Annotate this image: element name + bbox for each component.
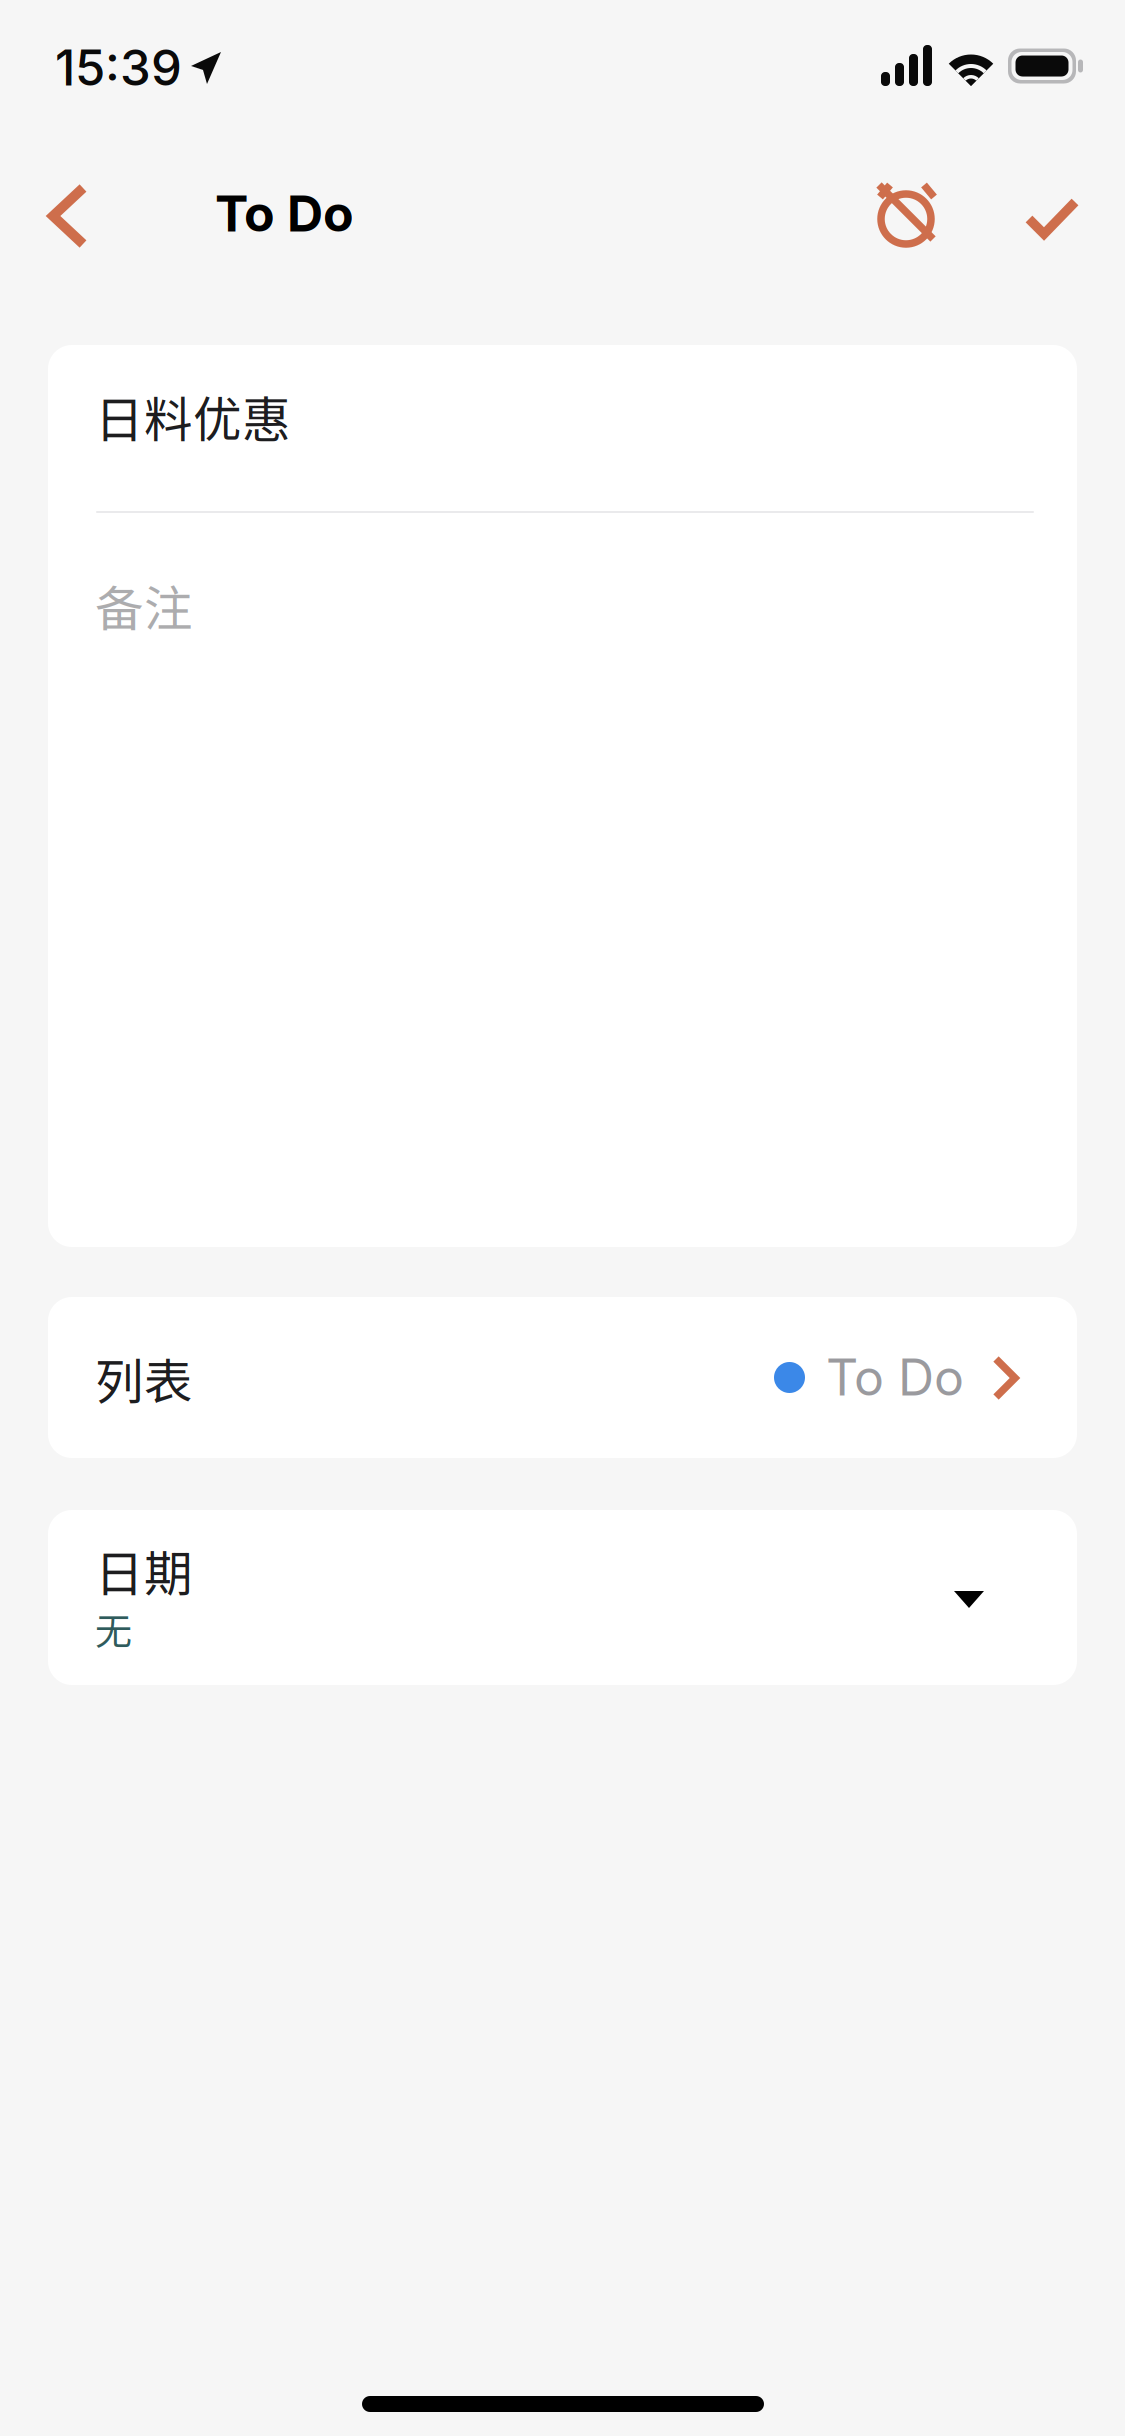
button[interactable]: Set reminder (850, 156, 962, 268)
staticText: 备注 (95, 570, 193, 640)
staticText: To Do (215, 183, 354, 243)
staticText: 15:39 (55, 38, 182, 97)
button[interactable]: 日料优惠 (48, 345, 1077, 1247)
staticText: 日料优惠 (95, 381, 291, 451)
button[interactable]: 日期 (48, 1510, 1077, 1685)
staticText: 列表 (95, 1343, 193, 1413)
button[interactable]: Back (14, 160, 122, 272)
staticText: 无 (95, 1602, 132, 1656)
staticText: To Do (826, 1347, 964, 1407)
button[interactable]: Save (996, 162, 1108, 274)
button[interactable]: 列表 (48, 1297, 1077, 1458)
staticText: 日期 (95, 1535, 193, 1605)
